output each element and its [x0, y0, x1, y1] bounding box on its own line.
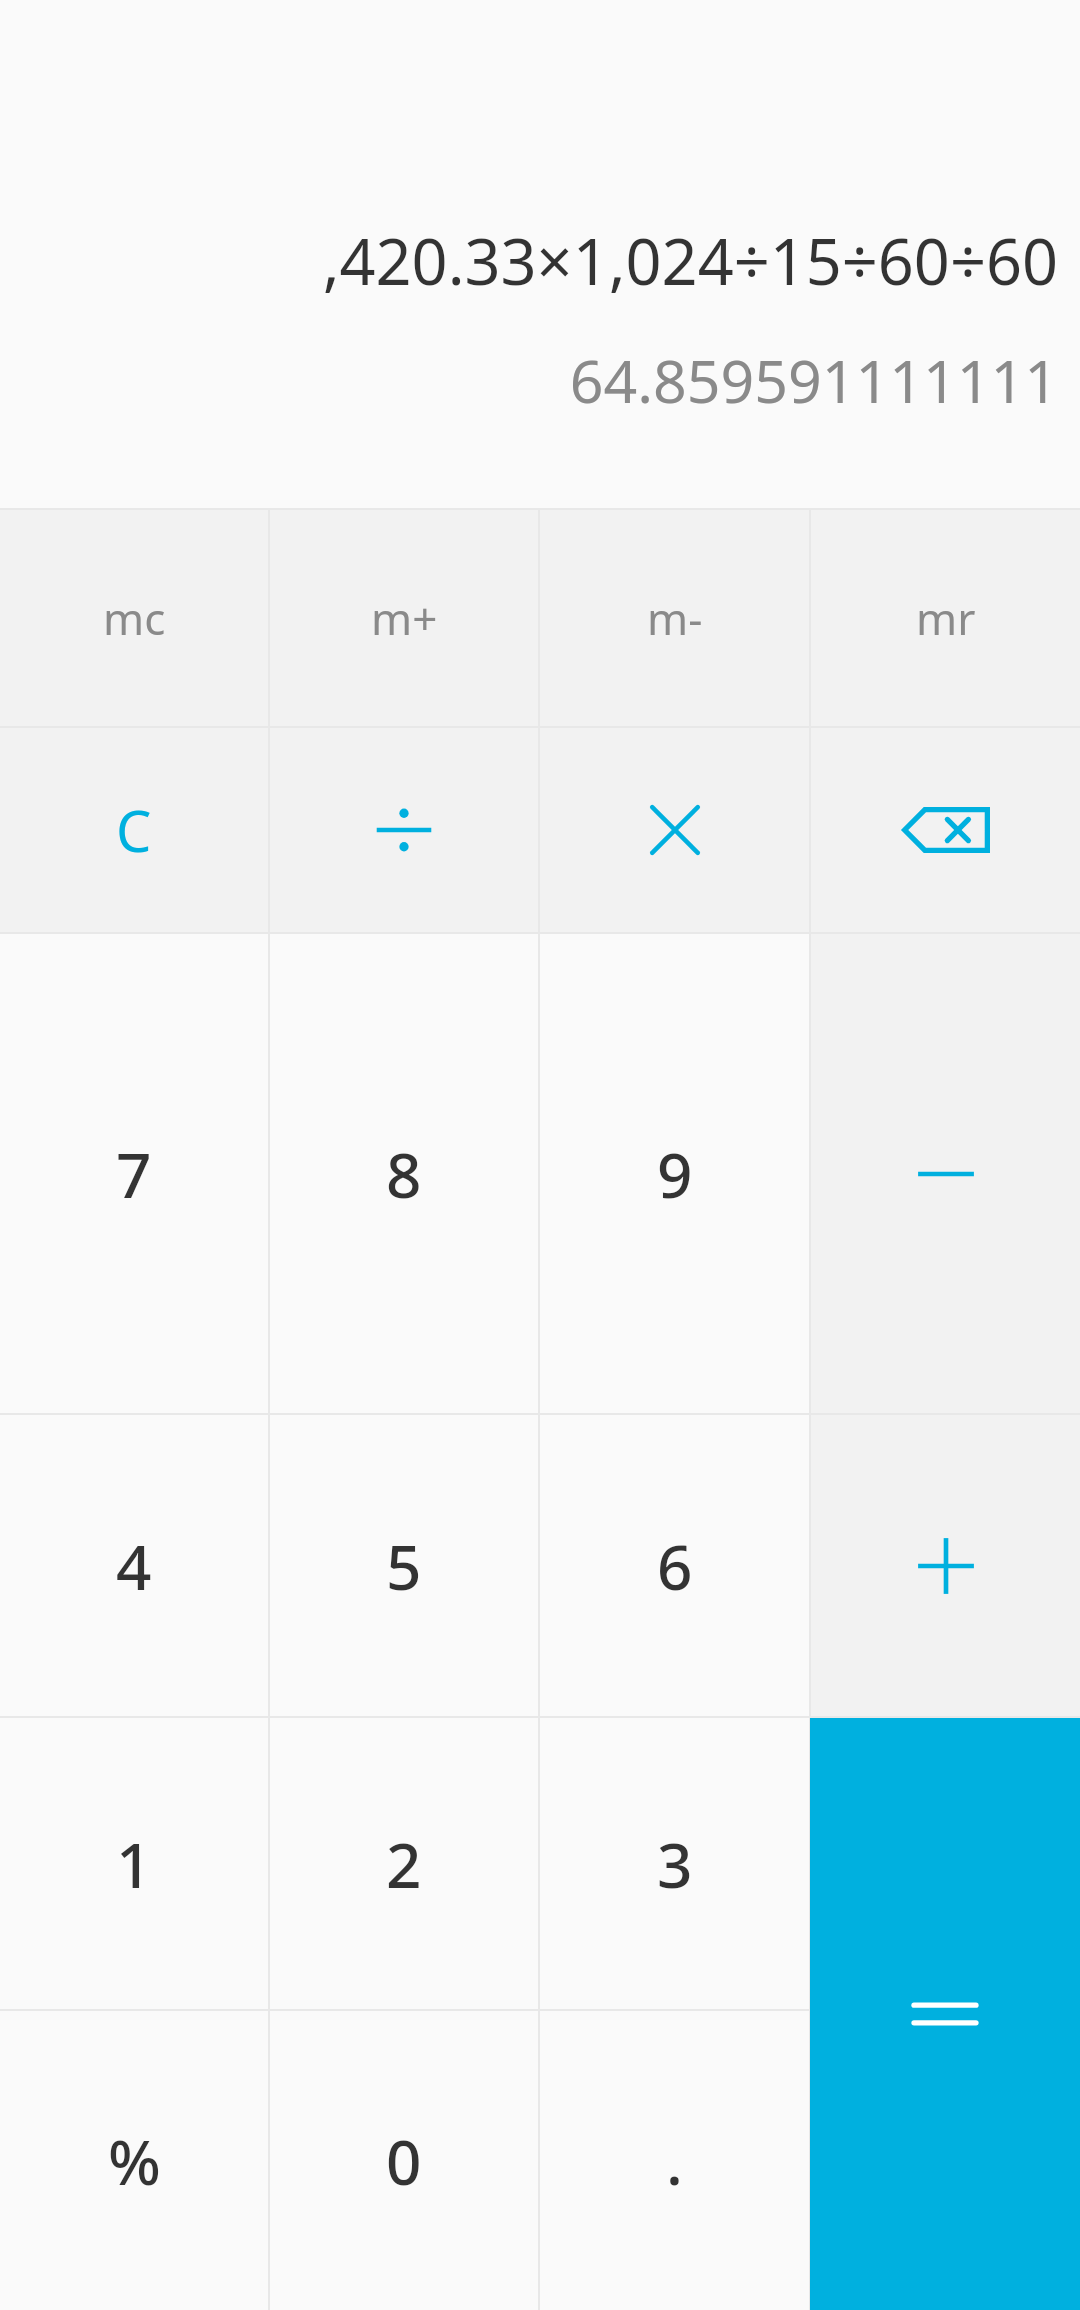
staticText: mc — [103, 588, 166, 648]
button[interactable]: Minus — [811, 934, 1080, 1413]
button[interactable]: 8 — [270, 934, 538, 1413]
staticText: 3 — [657, 1822, 693, 1906]
button[interactable]: 9 — [540, 934, 809, 1413]
button[interactable]: mr — [811, 510, 1080, 726]
staticText: 64.859591111111 — [569, 340, 1058, 420]
staticText: 1 — [116, 1822, 152, 1906]
staticText: ,420.33×1,024÷15÷60÷60 — [322, 218, 1058, 304]
button[interactable]: 7 — [0, 934, 268, 1413]
button[interactable]: . — [540, 2011, 809, 2310]
staticText: mr — [916, 588, 976, 648]
button[interactable]: 3 — [540, 1718, 809, 2009]
staticText: 5 — [386, 1524, 422, 1608]
button[interactable]: 6 — [540, 1415, 809, 1716]
staticText: 7 — [116, 1132, 152, 1216]
staticText: C — [116, 792, 152, 868]
staticText: m- — [647, 588, 703, 648]
button[interactable]: 5 — [270, 1415, 538, 1716]
button[interactable]: m+ — [270, 510, 538, 726]
staticText: % — [108, 2119, 161, 2203]
button[interactable]: % — [0, 2011, 268, 2310]
button[interactable]: Backspace — [811, 728, 1080, 932]
button[interactable]: Plus — [811, 1415, 1080, 1716]
button[interactable]: 4 — [0, 1415, 268, 1716]
button[interactable]: C — [0, 728, 268, 932]
staticText: . — [666, 2119, 683, 2203]
button[interactable]: mc — [0, 510, 268, 726]
button[interactable]: 0 — [270, 2011, 538, 2310]
staticText: 9 — [657, 1132, 693, 1216]
button[interactable]: m- — [540, 510, 809, 726]
button[interactable]: Divide — [270, 728, 538, 932]
staticText: 6 — [657, 1524, 693, 1608]
button[interactable]: Equals — [810, 1718, 1080, 2310]
staticText: 8 — [386, 1132, 422, 1216]
staticText: 2 — [386, 1822, 422, 1906]
button[interactable]: Multiply — [540, 728, 809, 932]
staticText: 0 — [386, 2119, 422, 2203]
button[interactable]: 2 — [270, 1718, 538, 2009]
staticText: 4 — [116, 1524, 152, 1608]
staticText: m+ — [371, 588, 438, 648]
button[interactable]: 1 — [0, 1718, 268, 2009]
